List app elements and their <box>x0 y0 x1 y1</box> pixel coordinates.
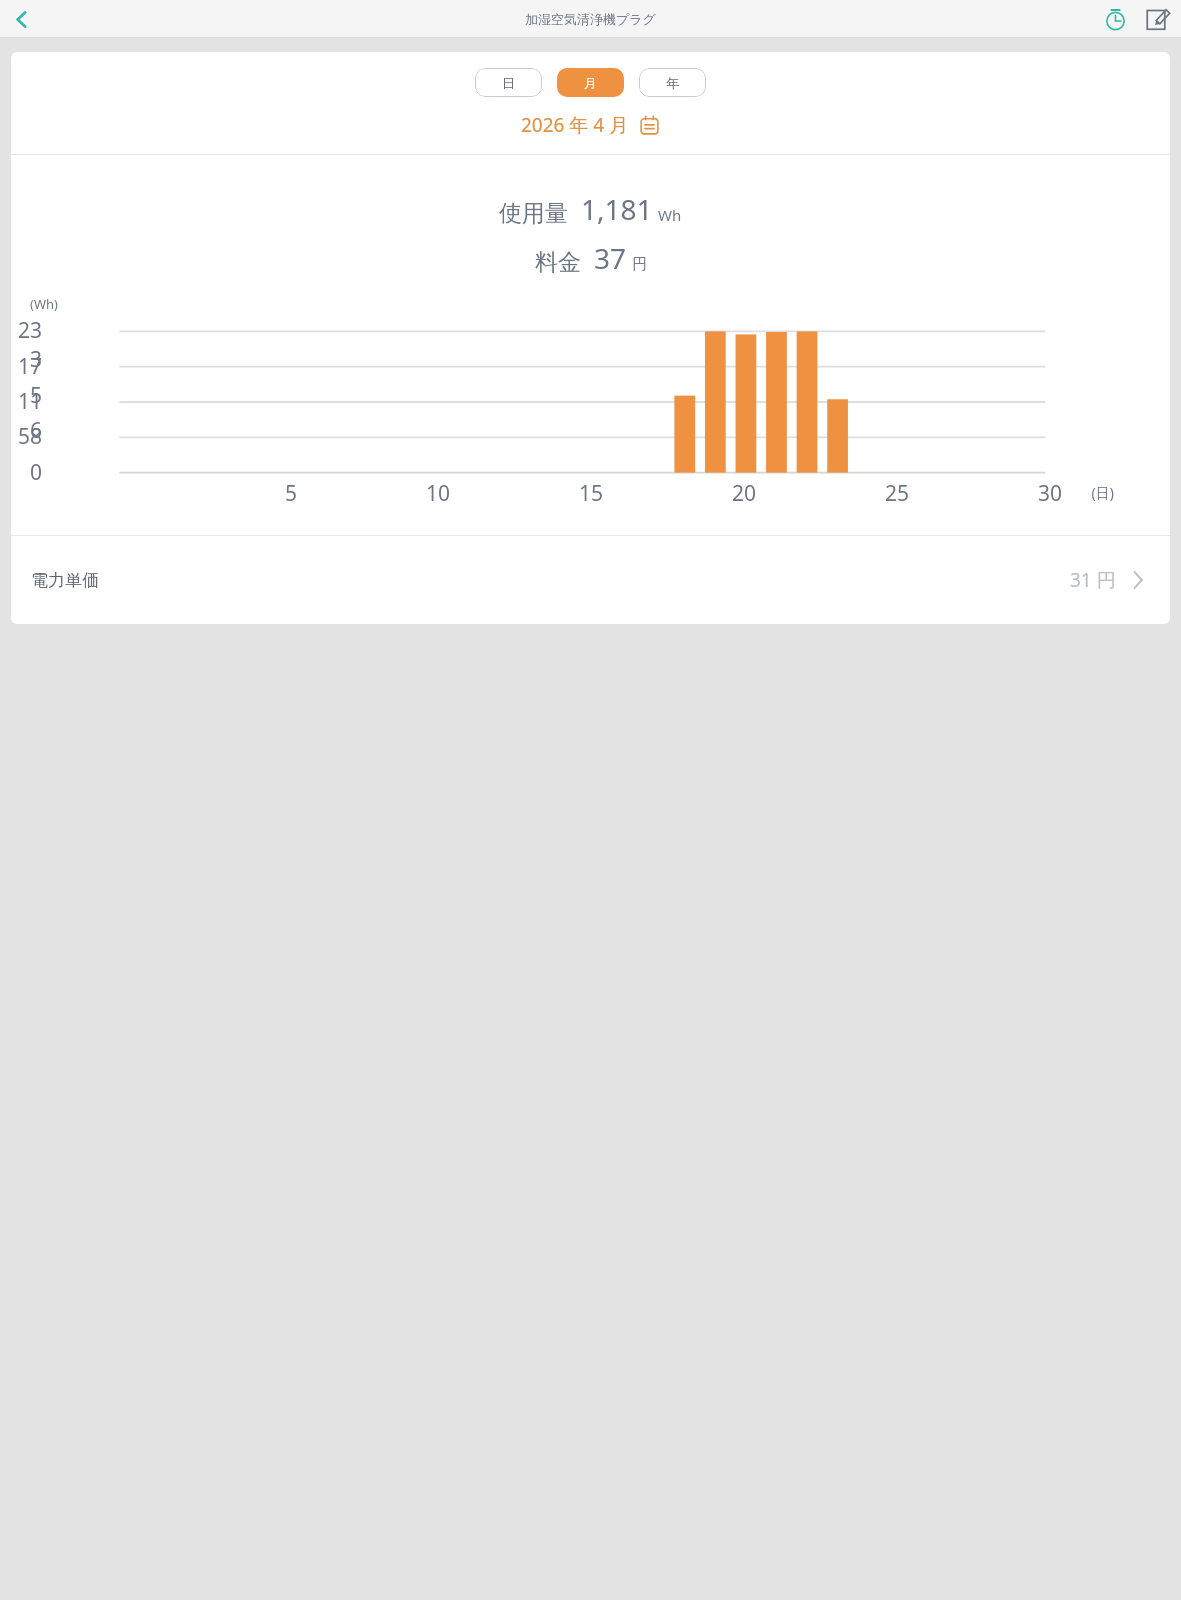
staticText: 15 <box>11 479 603 508</box>
staticText: 月 <box>584 75 597 91</box>
staticText: 料金 <box>535 248 581 277</box>
staticText: 日 <box>502 75 515 91</box>
button[interactable]: 年 <box>639 68 706 97</box>
button[interactable]: Back <box>3 1 39 37</box>
staticText: 31 円 <box>1070 567 1116 593</box>
staticText: 電力単価 <box>31 570 99 591</box>
button[interactable]: Edit <box>1139 1 1175 37</box>
button[interactable]: 電力単価 <box>11 536 1170 624</box>
staticText: 20 <box>11 479 756 508</box>
button[interactable]: 日 <box>475 68 542 97</box>
staticText: 5 <box>11 479 297 508</box>
staticText: (日) <box>11 483 1114 502</box>
staticText: 年 <box>666 75 679 91</box>
button[interactable]: Timer <box>1097 1 1133 37</box>
staticText: 116 <box>11 387 42 445</box>
staticText: 0 <box>11 458 42 487</box>
staticText: 円 <box>632 255 647 274</box>
button[interactable]: 月 <box>557 68 624 97</box>
staticText: 175 <box>11 352 42 410</box>
staticText: 37 <box>594 239 627 277</box>
staticText: 2026 年 4 月 <box>521 112 629 138</box>
button[interactable]: 2026 年 4 月 <box>515 109 666 141</box>
staticText: Wh <box>658 205 682 225</box>
staticText: 10 <box>11 479 450 508</box>
staticText: (Wh) <box>30 295 58 313</box>
staticText: 58 <box>11 422 42 451</box>
staticText: 25 <box>11 479 909 508</box>
staticText: 1,181 <box>581 190 653 228</box>
staticText: 30 <box>11 479 1062 508</box>
staticText: 233 <box>11 316 42 374</box>
staticText: 加湿空気清浄機プラグ <box>525 11 656 27</box>
staticText: 使用量 <box>499 199 568 228</box>
